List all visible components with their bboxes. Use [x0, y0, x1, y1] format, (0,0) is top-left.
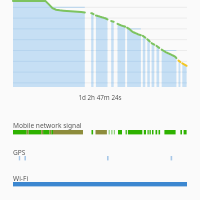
button[interactable]: Mobile network signal — [0, 0, 200, 200]
staticText: Mobile network signal — [13, 121, 82, 130]
staticText: 1d 2h 47m 24s — [0, 93, 200, 102]
staticText: GPS — [13, 148, 26, 157]
staticText: Wi-Fi — [13, 174, 29, 183]
button[interactable]: GPS — [0, 0, 200, 200]
button[interactable]: Wi-Fi — [0, 0, 200, 200]
